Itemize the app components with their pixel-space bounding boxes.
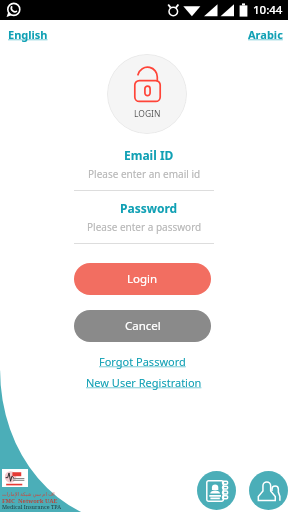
staticText: Cancel [125,318,161,334]
staticText: Login [127,271,158,287]
staticText: Email ID [124,147,174,163]
staticText: Medical Insurance TPA [2,503,62,510]
staticText: 10:44 [253,2,283,18]
button[interactable]: Contacts [197,471,236,510]
staticText: اف ام سي شبكة الإمارات [2,491,55,498]
button[interactable]: Providers [249,471,288,510]
staticText: New User Registration [86,375,202,390]
staticText: Password [120,200,178,216]
staticText: Arabic [248,27,283,42]
button[interactable]: Arabic [244,25,287,44]
button[interactable]: Please enter a password [87,220,202,234]
staticText: FMC Network UAE [2,497,58,505]
button[interactable]: English [4,25,52,44]
button[interactable]: Login [74,263,211,295]
button[interactable]: Login [107,54,187,134]
button[interactable]: New User Registration [82,374,206,391]
button[interactable]: Cancel [74,310,211,342]
button[interactable]: Please enter an email id [88,167,201,181]
staticText: Forgot Password [99,354,186,369]
staticText: English [8,27,48,42]
button[interactable]: Forgot Password [95,353,190,370]
staticText: LOGIN [134,108,161,120]
